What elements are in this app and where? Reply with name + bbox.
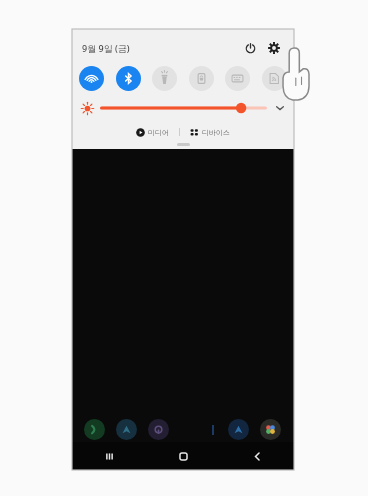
button[interactable]: Recents <box>72 442 146 470</box>
staticText: 9월 9일 (금) <box>82 42 130 54</box>
button[interactable]: App <box>84 419 105 440</box>
button[interactable]: Settings <box>264 38 284 58</box>
button[interactable]: Bluetooth <box>116 66 141 91</box>
button[interactable]: Home <box>146 442 220 470</box>
button[interactable]: 미디어 <box>133 127 172 138</box>
staticText: 디바이스 <box>202 128 230 137</box>
button[interactable]: Expand brightness settings <box>273 101 287 115</box>
button[interactable]: Keyboard <box>225 66 250 91</box>
button[interactable]: App <box>116 419 137 440</box>
button[interactable]: 디바이스 <box>187 127 233 138</box>
button[interactable]: Power <box>240 38 260 58</box>
button[interactable]: Flashlight <box>152 66 177 91</box>
button[interactable]: Back <box>220 442 294 470</box>
button[interactable]: App <box>148 419 169 440</box>
button[interactable]: App <box>228 419 249 440</box>
button[interactable]: Auto rotate <box>189 66 214 91</box>
button[interactable]: Brightness <box>100 101 267 115</box>
button[interactable]: Smart view <box>262 66 287 91</box>
button[interactable]: Wi-Fi <box>79 66 104 91</box>
staticText: 미디어 <box>148 128 169 137</box>
button[interactable]: App <box>260 419 281 440</box>
